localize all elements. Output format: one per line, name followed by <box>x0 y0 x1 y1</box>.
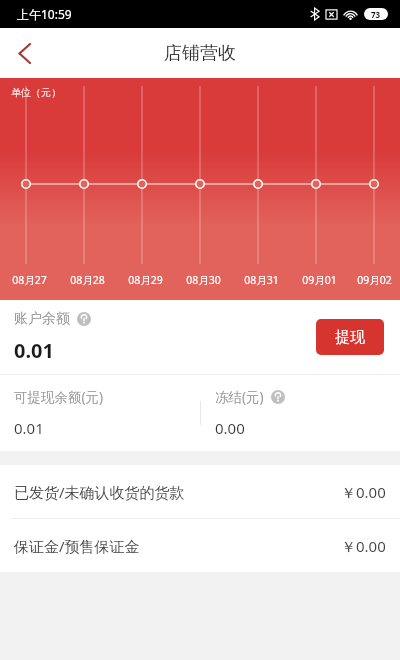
staticText: 0.01 <box>14 337 54 364</box>
staticText: 已发货/未确认收货的货款 <box>14 482 185 502</box>
staticText: 09月02 <box>357 273 392 287</box>
staticText: 0.00 <box>215 418 245 438</box>
staticText: 09月01 <box>302 273 337 287</box>
button[interactable]: Help <box>271 390 285 404</box>
staticText: 08月31 <box>244 273 279 287</box>
staticText: 08月28 <box>70 273 105 287</box>
staticText: 08月27 <box>12 273 47 287</box>
staticText: 可提现余额(元) <box>14 388 104 406</box>
staticText: 冻结(元) <box>215 388 264 406</box>
button[interactable]: 已发货/未确认收货的货款 <box>0 465 400 518</box>
staticText: 08月30 <box>186 273 221 287</box>
staticText: 账户余额 <box>14 310 70 328</box>
staticText: 08月29 <box>128 273 163 287</box>
button[interactable]: Back <box>0 29 48 77</box>
staticText: 73 <box>371 9 381 20</box>
staticText: 保证金/预售保证金 <box>14 536 140 556</box>
button[interactable]: Help <box>77 312 91 326</box>
button[interactable]: 保证金/预售保证金 <box>0 519 400 572</box>
staticText: ￥0.00 <box>341 536 386 556</box>
staticText: 单位（元） <box>11 86 61 99</box>
staticText: 店铺营收 <box>164 42 236 65</box>
staticText: 0.01 <box>14 418 44 438</box>
staticText: ￥0.00 <box>341 482 386 502</box>
button[interactable]: 提现 <box>316 319 384 355</box>
staticText: 提现 <box>335 328 365 347</box>
staticText: 上午10:59 <box>17 6 72 22</box>
